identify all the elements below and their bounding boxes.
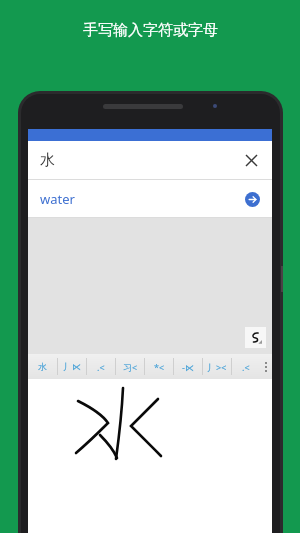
button[interactable]: 水 <box>28 354 57 379</box>
staticText: 习< <box>123 361 138 373</box>
button[interactable]: 丿>< <box>203 354 231 379</box>
button[interactable]: -⋉ <box>174 354 202 379</box>
button[interactable]: Handwriting input <box>245 327 266 348</box>
button[interactable]: Clear <box>234 143 268 177</box>
staticText: .< <box>97 361 105 373</box>
button[interactable]: *< <box>145 354 173 379</box>
staticText: -⋉ <box>182 361 194 373</box>
button[interactable]: .< <box>87 354 115 379</box>
button[interactable]: 丿⋉ <box>58 354 86 379</box>
staticText: 水 <box>40 151 55 170</box>
button[interactable]: water <box>28 180 272 217</box>
button[interactable]: 习< <box>116 354 144 379</box>
button[interactable]: .< <box>232 354 260 379</box>
button[interactable]: Handwriting area <box>28 379 272 533</box>
staticText: 手写输入字符或字母 <box>83 21 218 40</box>
staticText: water <box>40 190 75 208</box>
button[interactable]: More candidates <box>260 354 272 379</box>
staticText: 丿⋉ <box>63 361 81 372</box>
staticText: 水 <box>38 361 47 372</box>
staticText: .< <box>242 361 250 373</box>
staticText: *< <box>154 361 165 373</box>
staticText: 丿>< <box>207 361 227 373</box>
